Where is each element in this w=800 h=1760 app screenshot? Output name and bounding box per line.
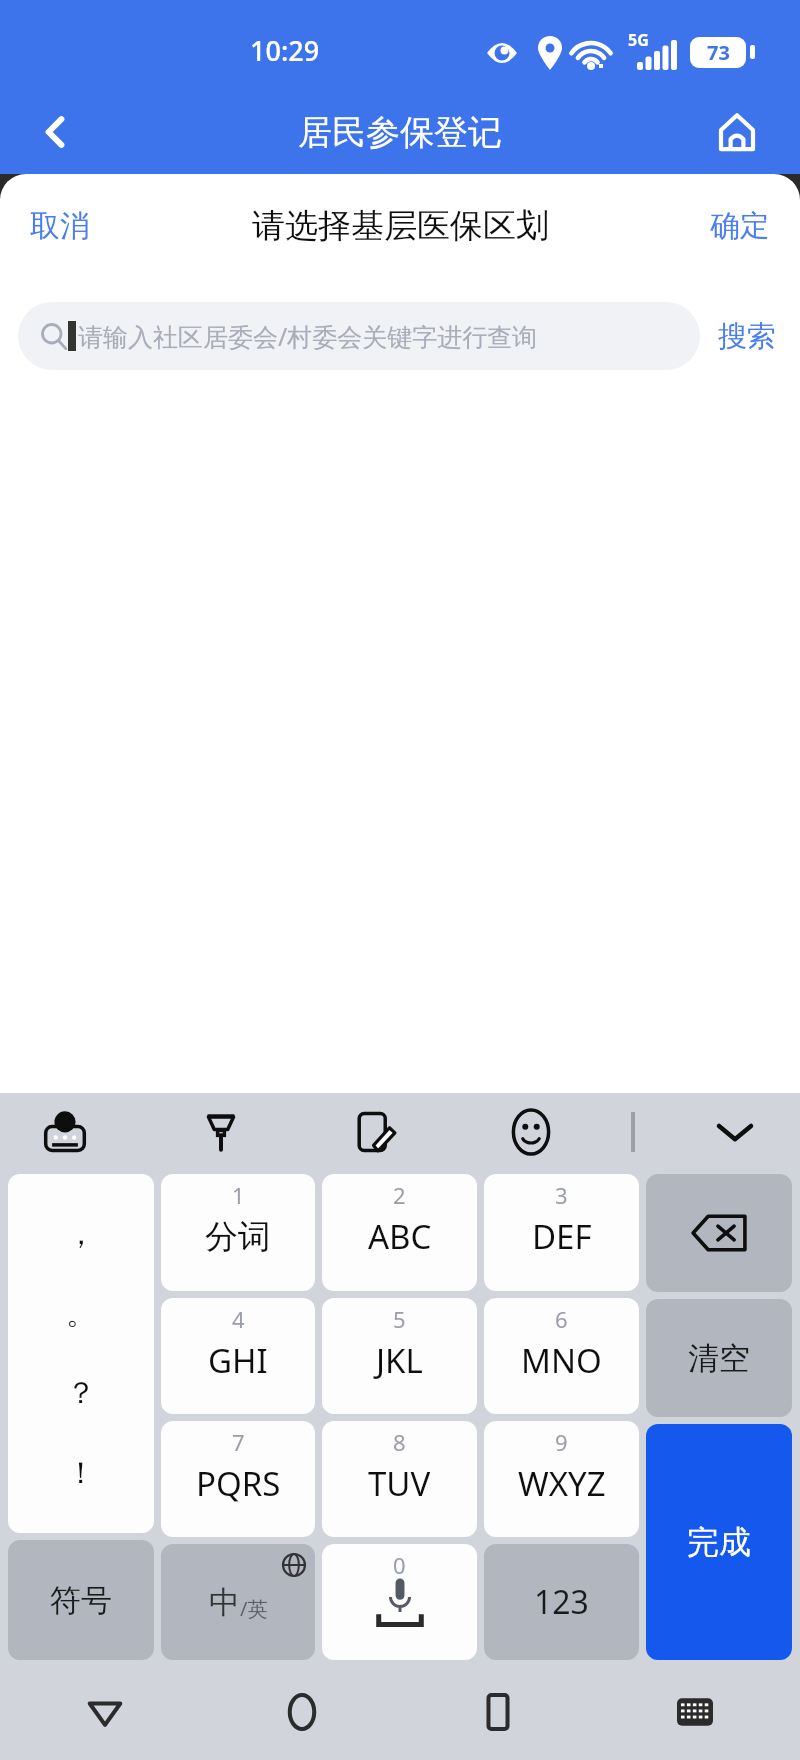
staticText: 10:29 [250, 32, 320, 69]
button[interactable]: 3 [484, 1174, 639, 1291]
button[interactable]: AI write [321, 1093, 431, 1170]
staticText: MNO [521, 1338, 602, 1383]
button[interactable]: Input language [10, 1093, 120, 1170]
button[interactable]: 中 [161, 1544, 315, 1660]
button[interactable]: 1 [161, 1174, 315, 1291]
staticText: 5 [393, 1304, 406, 1334]
button[interactable]: Voice input / space [322, 1544, 477, 1660]
staticText: 6 [555, 1304, 568, 1334]
button[interactable]: 6 [484, 1298, 639, 1414]
button[interactable]: Recents [453, 1667, 543, 1757]
button[interactable]: 9 [484, 1421, 639, 1537]
button[interactable]: Theme [166, 1093, 276, 1170]
button[interactable]: 2 [322, 1174, 477, 1291]
staticText: WXYZ [518, 1461, 606, 1506]
button[interactable]: Back [18, 95, 92, 169]
staticText: 0 [393, 1550, 406, 1580]
staticText: 3 [555, 1180, 568, 1210]
staticText: 符号 [50, 1581, 112, 1620]
button[interactable]: 符号 [8, 1540, 154, 1660]
staticText: 1 [232, 1180, 245, 1210]
button[interactable]: 清空 [646, 1299, 792, 1417]
staticText: 清空 [688, 1339, 750, 1378]
staticText: 分词 [205, 1216, 271, 1258]
staticText: 完成 [687, 1522, 751, 1562]
staticText: 8 [393, 1427, 406, 1457]
button[interactable]: 4 [161, 1298, 315, 1414]
button[interactable]: 取消 [10, 195, 110, 257]
staticText: 9 [555, 1427, 568, 1457]
staticText: JKL [376, 1338, 423, 1383]
button[interactable]: Backspace [646, 1174, 792, 1292]
staticText: DEF [532, 1214, 592, 1259]
button[interactable]: Hide keyboard [680, 1093, 790, 1170]
staticText: 2 [393, 1180, 406, 1210]
staticText: 7 [232, 1427, 245, 1457]
button[interactable]: Hide keyboard [650, 1667, 740, 1757]
button[interactable]: 完成 [646, 1424, 792, 1660]
staticText: ， [66, 1215, 96, 1253]
button[interactable]: 搜索 [700, 308, 782, 365]
staticText: 123 [534, 1580, 589, 1624]
staticText: 中 [209, 1583, 240, 1622]
button[interactable]: Back [60, 1667, 150, 1757]
staticText: 5G [628, 29, 649, 51]
staticText: 搜索 [718, 318, 776, 355]
button[interactable]: 确定 [690, 195, 790, 257]
staticText: ABC [368, 1214, 432, 1259]
staticText: ！ [66, 1454, 96, 1492]
button[interactable]: 5 [322, 1298, 477, 1414]
button[interactable]: Home [257, 1667, 347, 1757]
staticText: 居民参保登记 [298, 111, 502, 154]
button[interactable]: Emoji [476, 1093, 586, 1170]
button[interactable]: 请输入社区居委会/村委会关键字进行查询 [18, 302, 700, 370]
staticText: ？ [66, 1374, 96, 1412]
button[interactable]: ， [8, 1174, 154, 1533]
staticText: GHI [208, 1338, 268, 1383]
staticText: /英 [240, 1595, 268, 1622]
staticText: 请选择基层医保区划 [252, 205, 549, 247]
staticText: 4 [232, 1304, 245, 1334]
button[interactable]: 123 [484, 1544, 639, 1660]
staticText: 确定 [710, 207, 770, 245]
staticText: PQRS [196, 1461, 281, 1506]
button[interactable]: 7 [161, 1421, 315, 1537]
staticText: 请输入社区居委会/村委会关键字进行查询 [78, 319, 538, 353]
button[interactable]: 8 [322, 1421, 477, 1537]
button[interactable]: Home [700, 95, 774, 169]
staticText: 73 [707, 39, 730, 66]
staticText: 。 [66, 1295, 96, 1333]
staticText: 取消 [30, 207, 90, 245]
staticText: TUV [368, 1461, 431, 1506]
